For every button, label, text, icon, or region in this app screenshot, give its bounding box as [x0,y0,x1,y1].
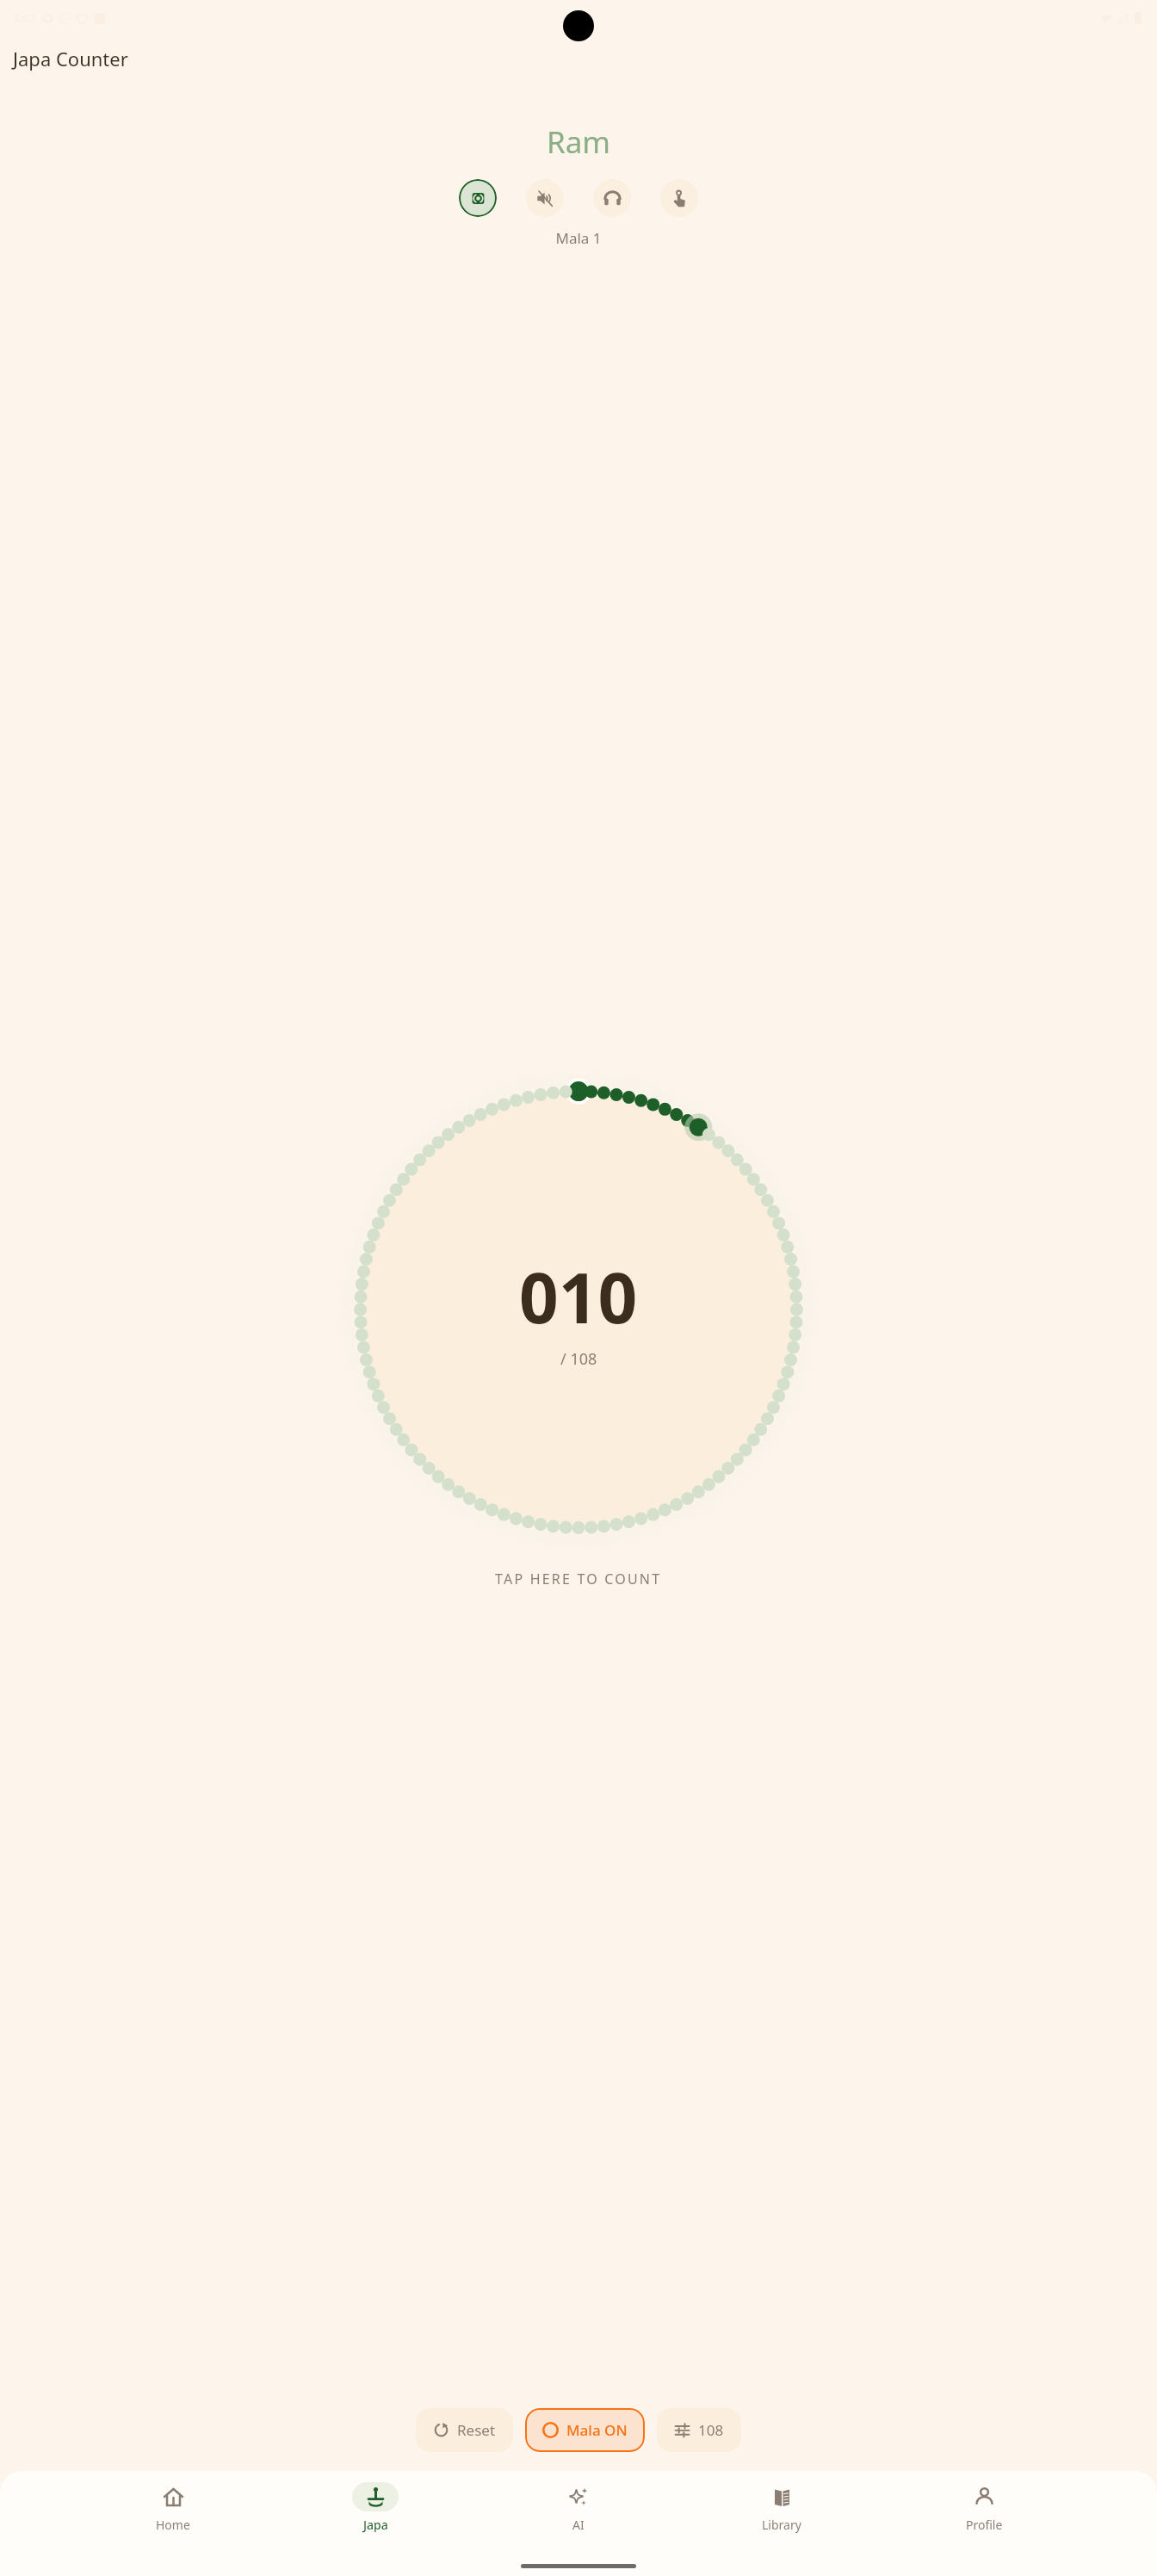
staticText: / 108 [560,1348,597,1370]
button[interactable]: Profile [954,2482,1014,2533]
staticText: AI [572,2517,585,2533]
button[interactable]: Japa [345,2482,405,2533]
button[interactable]: Home [143,2482,203,2533]
button[interactable]: Touch [660,179,698,217]
button[interactable]: Vibration [459,179,497,217]
staticText: Reset [457,2420,496,2440]
staticText: 108 [698,2420,724,2440]
staticText: Profile [966,2517,1003,2533]
button[interactable]: Mala ON [525,2408,645,2452]
staticText: Ram [0,121,1157,163]
button[interactable]: 108 [657,2408,741,2452]
button[interactable]: Library [752,2482,812,2533]
button[interactable]: Mute [526,179,564,217]
staticText: Japa Counter [13,46,128,71]
staticText: TAP HERE TO COUNT [495,1570,662,1588]
staticText: Library [762,2517,801,2533]
button[interactable]: AI [548,2482,609,2533]
button[interactable]: Headphones [593,179,631,217]
button[interactable]: Reset [416,2408,513,2452]
staticText: Mala 1 [0,228,1157,248]
staticText: Mala ON [566,2420,628,2440]
staticText: 010 [519,1249,638,1343]
button[interactable]: 010 [337,1068,820,1551]
staticText: Home [156,2517,190,2533]
staticText: Japa [363,2517,388,2533]
